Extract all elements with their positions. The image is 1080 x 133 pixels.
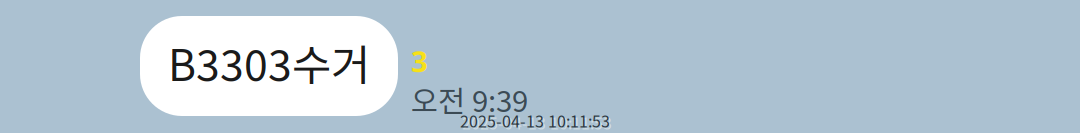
staticText: 2025-04-13 10:11:53 bbox=[462, 111, 612, 133]
staticText: 오전 9:39 bbox=[411, 78, 528, 120]
staticText: 2025-04-13 10:11:53 bbox=[460, 109, 610, 132]
staticText: B3303수거 bbox=[168, 32, 370, 93]
button[interactable]: B3303수거 bbox=[140, 16, 398, 116]
staticText: 3 bbox=[411, 41, 428, 81]
